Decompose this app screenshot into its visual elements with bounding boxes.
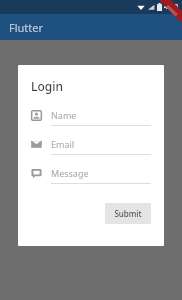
staticText: Name <box>51 109 77 121</box>
button[interactable]: Message <box>31 167 151 196</box>
other: Email <box>31 139 42 150</box>
button[interactable]: Submit <box>105 203 151 224</box>
staticText: Login <box>31 78 63 94</box>
other: Name <box>31 110 42 121</box>
staticText: Submit <box>114 208 142 219</box>
staticText: Email <box>51 138 75 150</box>
button[interactable]: Email <box>31 138 151 167</box>
staticText: Message <box>51 167 89 179</box>
staticText: Flutter <box>9 20 44 35</box>
button[interactable]: Name <box>31 109 151 138</box>
staticText: 4:00 <box>164 2 178 12</box>
other: Message <box>31 168 42 179</box>
